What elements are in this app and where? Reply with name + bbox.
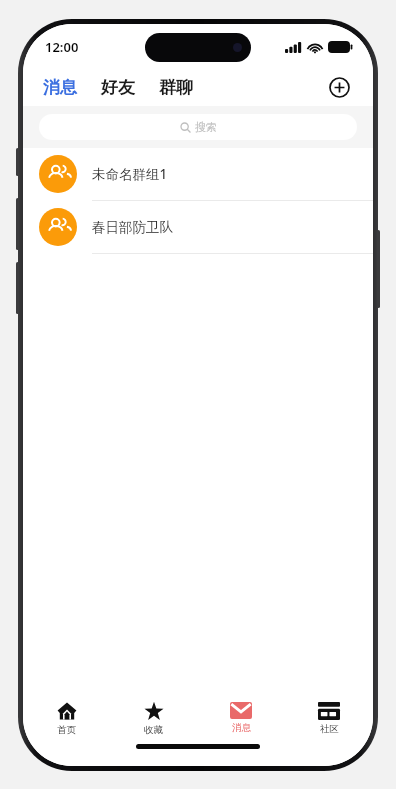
staticText: 消息 bbox=[232, 722, 251, 734]
button[interactable]: 收藏 bbox=[110, 692, 197, 744]
staticText: 搜索 bbox=[195, 120, 217, 134]
button[interactable]: 好友 bbox=[99, 73, 137, 102]
staticText: 消息 bbox=[43, 77, 77, 98]
button[interactable]: 社区 bbox=[285, 692, 373, 744]
button[interactable]: 搜索 bbox=[39, 114, 357, 140]
staticText: 春日部防卫队 bbox=[92, 219, 173, 236]
staticText: 群聊 bbox=[159, 77, 193, 98]
staticText: 社区 bbox=[320, 723, 339, 735]
staticText: 未命名群组1 bbox=[92, 165, 168, 183]
button[interactable]: 群聊 bbox=[157, 73, 195, 102]
button[interactable]: 首页 bbox=[23, 692, 110, 744]
button[interactable]: 新建 bbox=[323, 71, 355, 103]
button[interactable]: 未命名群组1 bbox=[23, 148, 373, 201]
staticText: 12:00 bbox=[45, 38, 79, 56]
staticText: 首页 bbox=[57, 724, 76, 736]
staticText: 好友 bbox=[101, 77, 135, 98]
staticText: 收藏 bbox=[144, 724, 163, 736]
button[interactable]: 消息 bbox=[41, 73, 79, 102]
button[interactable]: 春日部防卫队 bbox=[23, 201, 373, 254]
button[interactable]: 消息 bbox=[197, 692, 285, 744]
